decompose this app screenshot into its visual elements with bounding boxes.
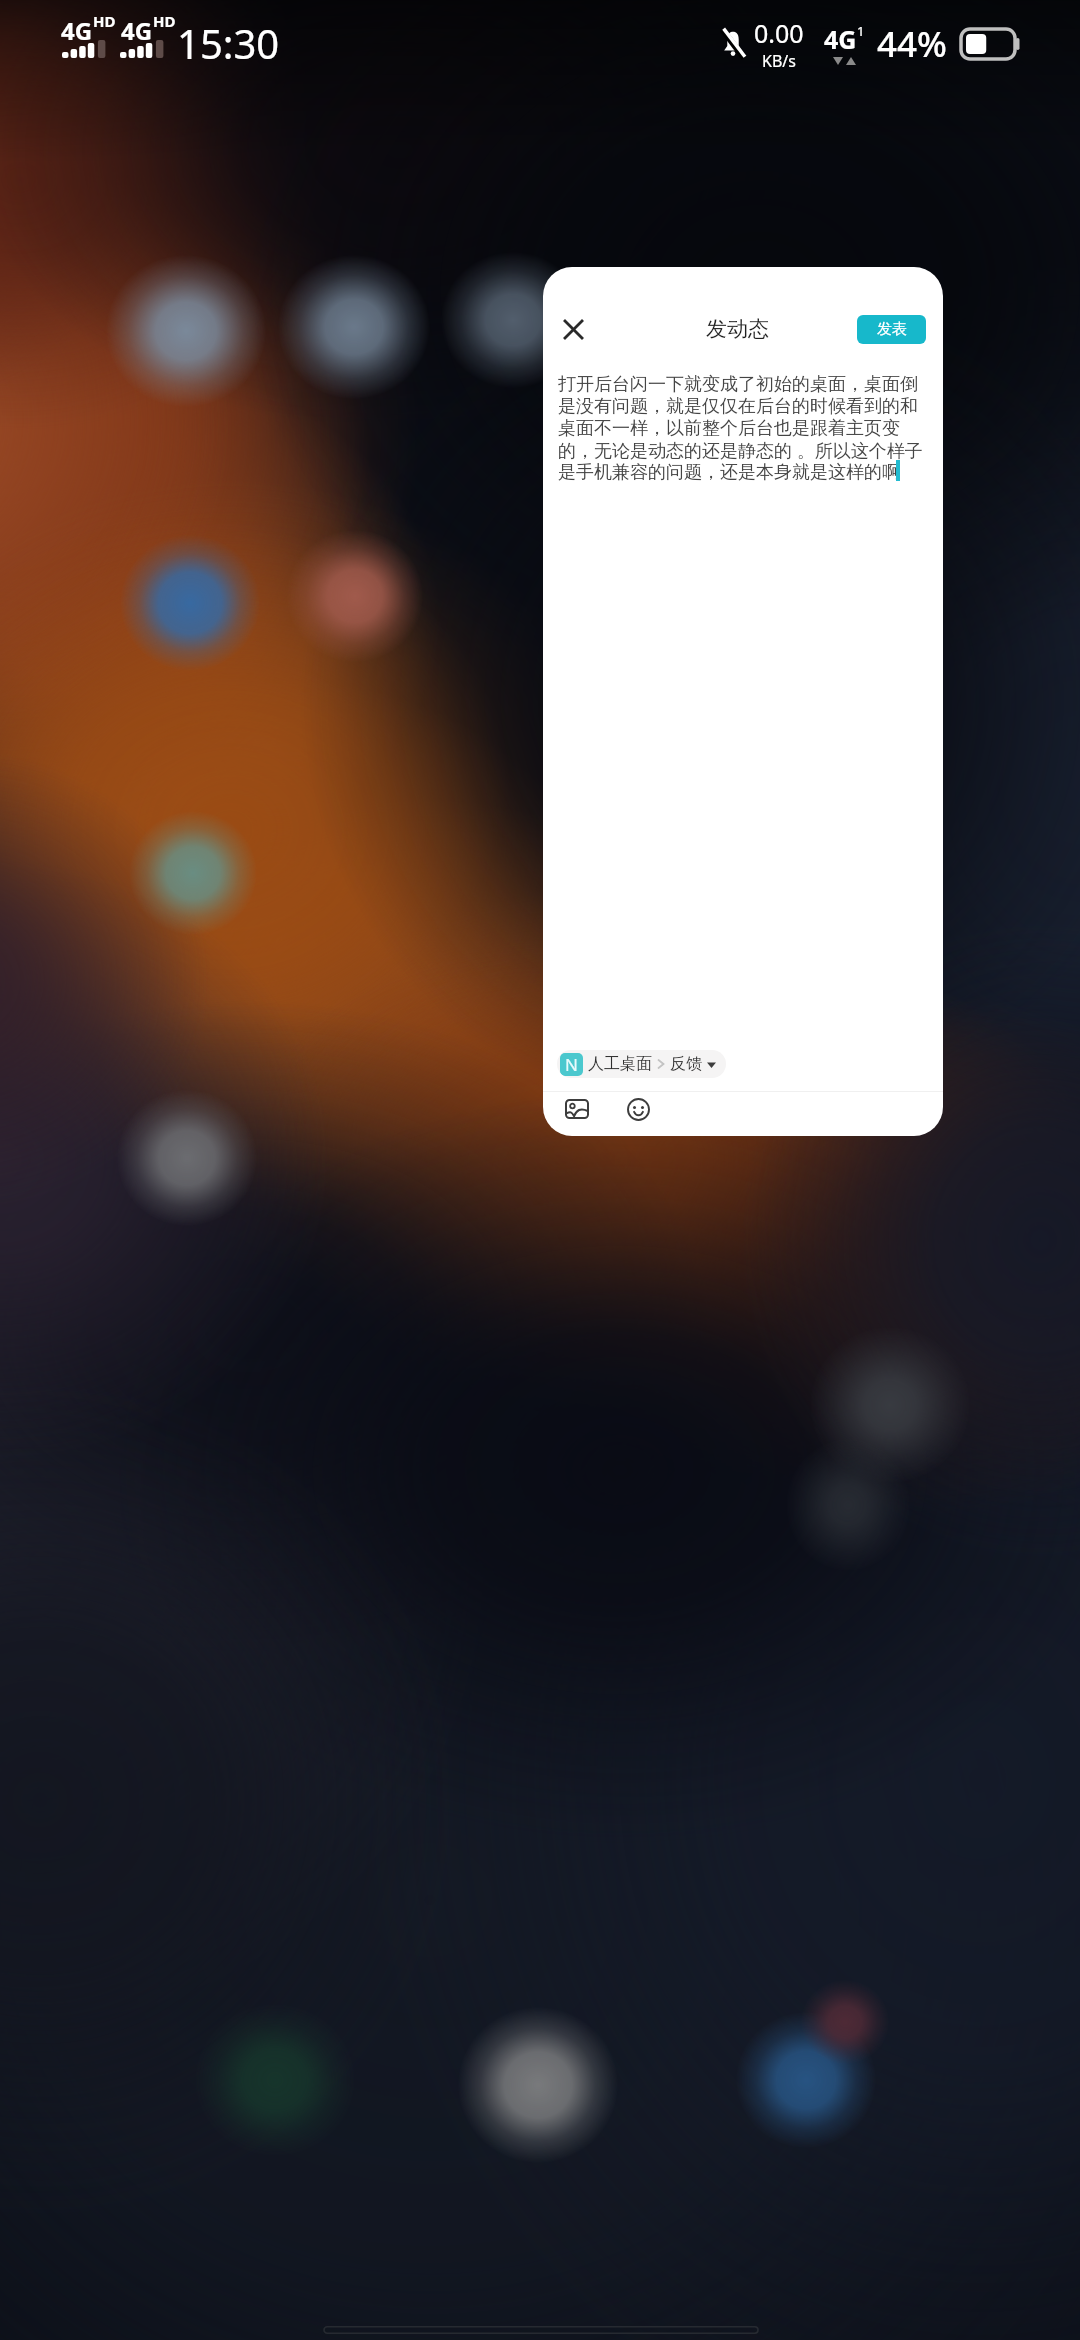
staticText: 1	[857, 22, 865, 40]
staticText: 15:30	[177, 16, 280, 70]
staticText: 打开后台闪一下就变成了初始的桌面，桌面倒是没有问题，就是仅仅在后台的时候看到的和…	[558, 373, 932, 483]
staticText: N	[565, 1053, 578, 1076]
button[interactable]: Close	[555, 311, 591, 347]
staticText: 4G	[824, 22, 857, 56]
staticText: HD	[153, 11, 176, 31]
staticText: 0.00	[754, 16, 804, 50]
staticText: HD	[93, 11, 116, 31]
button[interactable]: N	[557, 1050, 726, 1078]
staticText: 发动态	[706, 316, 769, 342]
staticText: 人工桌面	[588, 1054, 652, 1074]
staticText: 4G	[61, 14, 93, 47]
button[interactable]: 发表	[857, 315, 926, 344]
staticText: 4G	[121, 14, 153, 47]
staticText: 反馈	[670, 1054, 702, 1074]
button[interactable]: Emoji	[621, 1092, 655, 1126]
staticText: 44%	[877, 20, 947, 68]
button[interactable]: Add image	[560, 1092, 594, 1126]
staticText: KB/s	[762, 50, 796, 72]
staticText: 发表	[877, 320, 907, 339]
